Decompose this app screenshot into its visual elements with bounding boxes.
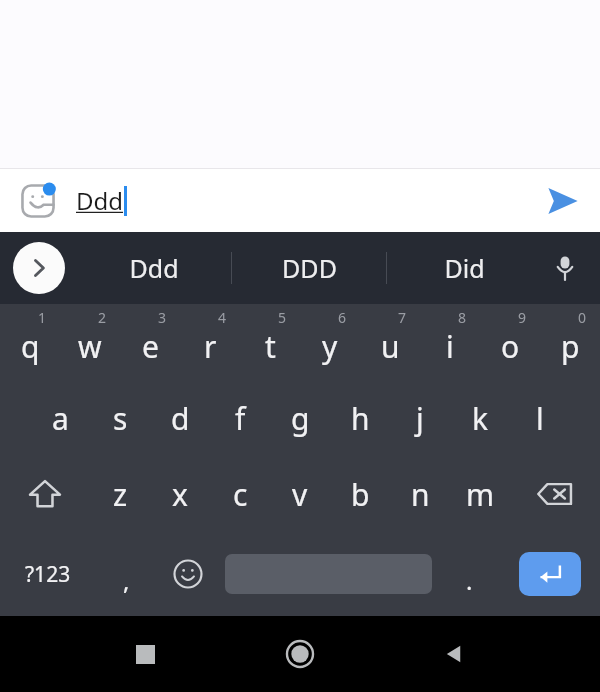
staticText: . — [466, 564, 473, 597]
button[interactable]: p — [540, 304, 600, 380]
staticText: w — [78, 326, 102, 367]
button[interactable]: e — [120, 304, 180, 380]
button[interactable]: r — [180, 304, 240, 380]
button[interactable]: Enter — [519, 552, 581, 596]
staticText: 1 — [38, 308, 47, 327]
staticText: u — [381, 326, 400, 367]
staticText: a — [52, 398, 69, 439]
staticText: l — [536, 398, 544, 439]
staticText: q — [21, 326, 40, 367]
button[interactable]: Backspace — [510, 456, 600, 532]
button[interactable]: m — [450, 456, 510, 532]
staticText: k — [472, 398, 489, 439]
button[interactable]: Send — [538, 177, 586, 225]
staticText: 5 — [278, 308, 287, 327]
button[interactable]: c — [210, 456, 270, 532]
button[interactable]: g — [270, 380, 330, 456]
staticText: h — [351, 398, 370, 439]
staticText: d — [171, 398, 190, 439]
staticText: 8 — [458, 308, 467, 327]
staticText: 7 — [398, 308, 407, 327]
button[interactable]: b — [330, 456, 390, 532]
button[interactable]: i — [420, 304, 480, 380]
button[interactable]: h — [330, 380, 390, 456]
button[interactable]: l — [510, 380, 570, 456]
staticText: p — [561, 326, 580, 367]
staticText: 0 — [578, 308, 587, 327]
button[interactable]: Recents — [117, 626, 173, 682]
button[interactable]: Back — [427, 626, 483, 682]
staticText: c — [233, 474, 248, 515]
button[interactable]: Home — [272, 626, 328, 682]
button[interactable]: z — [90, 456, 150, 532]
button[interactable]: k — [450, 380, 510, 456]
staticText: DDD — [282, 251, 337, 285]
staticText: x — [172, 474, 188, 515]
button[interactable]: Ddd — [76, 232, 231, 304]
button[interactable]: , — [95, 532, 157, 616]
staticText: 6 — [338, 308, 347, 327]
button[interactable]: DDD — [232, 232, 386, 304]
staticText: 4 — [218, 308, 227, 327]
button[interactable]: Shift — [0, 456, 90, 532]
button[interactable]: q — [0, 304, 60, 380]
button[interactable]: . — [438, 532, 500, 616]
staticText: e — [142, 326, 159, 367]
button[interactable]: More suggestions — [13, 242, 65, 294]
staticText: n — [411, 474, 430, 515]
staticText: g — [291, 398, 310, 439]
button[interactable]: x — [150, 456, 210, 532]
button[interactable]: t — [240, 304, 300, 380]
staticText: m — [466, 474, 495, 515]
staticText: 3 — [158, 308, 167, 327]
button[interactable]: s — [90, 380, 150, 456]
button[interactable]: o — [480, 304, 540, 380]
button[interactable]: Stickers — [14, 177, 62, 225]
staticText: j — [416, 398, 424, 439]
staticText: , — [123, 564, 130, 597]
staticText: s — [113, 398, 128, 439]
button[interactable]: Did — [387, 232, 541, 304]
staticText: f — [235, 398, 246, 439]
staticText: Ddd — [129, 251, 179, 285]
staticText: 9 — [518, 308, 527, 327]
staticText: b — [351, 474, 370, 515]
button[interactable]: f — [210, 380, 270, 456]
staticText: Did — [444, 251, 485, 285]
staticText: y — [322, 326, 338, 367]
staticText: i — [446, 326, 454, 367]
button[interactable]: a — [30, 380, 90, 456]
button[interactable]: ?123 — [0, 532, 95, 616]
button[interactable]: Emoji — [157, 532, 219, 616]
button[interactable]: Voice input — [538, 241, 592, 295]
staticText: z — [113, 474, 128, 515]
staticText: o — [501, 326, 520, 367]
button[interactable]: d — [150, 380, 210, 456]
button[interactable]: v — [270, 456, 330, 532]
staticText: Ddd — [76, 184, 124, 217]
button[interactable]: u — [360, 304, 420, 380]
staticText: ?123 — [25, 560, 71, 589]
button[interactable]: y — [300, 304, 360, 380]
staticText: t — [265, 326, 276, 367]
staticText: 2 — [98, 308, 107, 327]
button[interactable]: w — [60, 304, 120, 380]
button[interactable]: n — [390, 456, 450, 532]
staticText: r — [204, 326, 217, 367]
button[interactable]: j — [390, 380, 450, 456]
staticText: v — [292, 474, 308, 515]
